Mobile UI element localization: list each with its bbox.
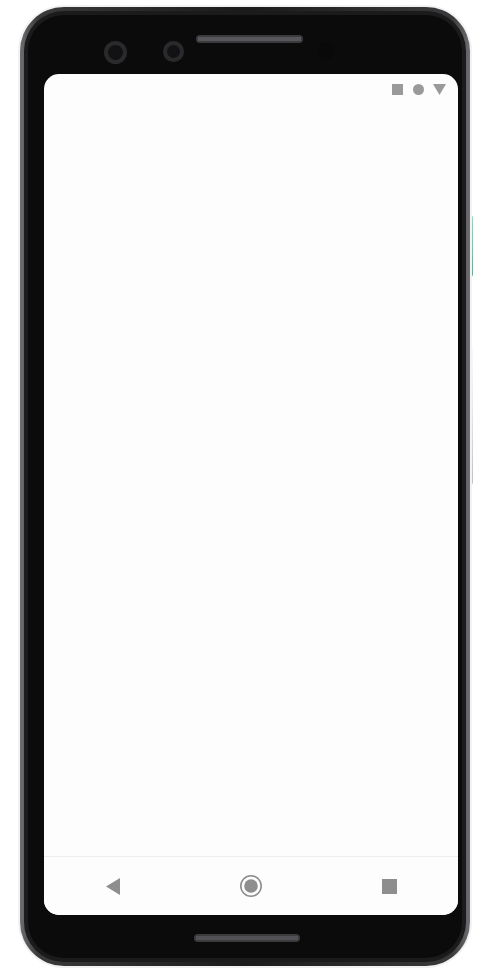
button[interactable]: Home	[182, 857, 320, 915]
button[interactable]: Back	[44, 857, 182, 915]
button[interactable]: Power	[466, 215, 473, 277]
button[interactable]: Volume	[466, 345, 473, 485]
button[interactable]: Recent apps	[320, 857, 458, 915]
